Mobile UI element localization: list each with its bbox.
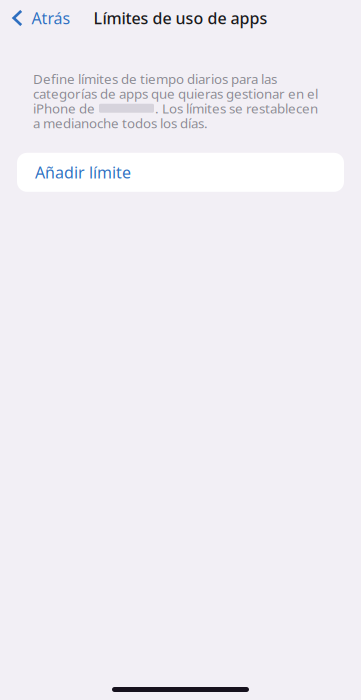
staticText: . Los límites se restablecen: [155, 99, 318, 117]
button[interactable]: Añadir límite: [17, 153, 344, 192]
staticText: Límites de uso de apps: [93, 7, 267, 29]
staticText: categorías de apps que quieras gestionar…: [33, 85, 318, 102]
button[interactable]: Atrás: [0, 0, 110, 36]
staticText: Atrás: [32, 7, 71, 29]
staticText: Añadir límite: [35, 162, 131, 183]
staticText: iPhone de: [33, 99, 95, 117]
staticText: Define límites de tiempo diarios para la…: [33, 70, 277, 88]
staticText: a medianoche todos los días.: [33, 114, 208, 132]
